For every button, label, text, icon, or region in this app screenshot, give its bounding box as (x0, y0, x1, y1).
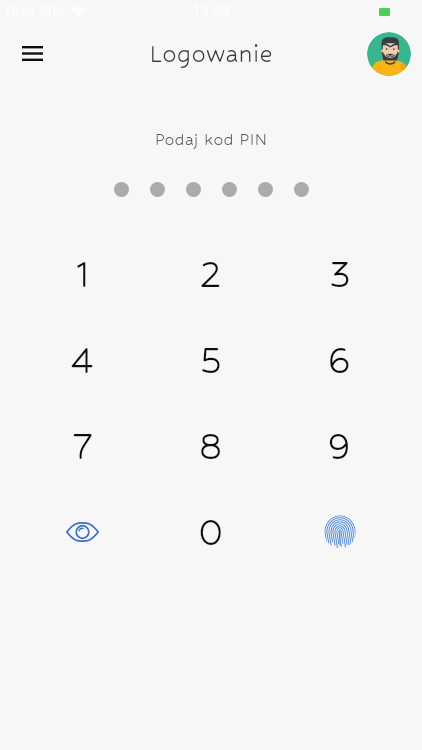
staticText: 6 (327, 339, 352, 382)
staticText: 3 (328, 253, 352, 296)
button[interactable]: 9 (275, 403, 404, 489)
button[interactable]: 8 (146, 403, 275, 489)
button[interactable]: 2 (146, 231, 275, 317)
staticText: 4 (70, 339, 94, 382)
staticText: Logowanie (0, 40, 422, 68)
button[interactable]: Fingerprint login (275, 489, 404, 575)
button[interactable]: 6 (275, 317, 404, 403)
staticText: 9 (327, 425, 352, 468)
button[interactable]: 4 (18, 317, 146, 403)
button[interactable]: Show PIN (18, 489, 146, 575)
button[interactable]: 5 (146, 317, 275, 403)
staticText: Podaj kod PIN (0, 130, 422, 149)
staticText: 7 (72, 425, 93, 468)
button[interactable]: 1 (18, 231, 146, 317)
button[interactable]: Menu (9, 30, 55, 76)
staticText: 8 (198, 425, 224, 468)
staticText: 1 (75, 253, 90, 296)
button[interactable]: Profile (367, 32, 411, 76)
button[interactable]: 0 (146, 489, 275, 575)
button[interactable]: 7 (18, 403, 146, 489)
staticText: 0 (198, 511, 224, 554)
staticText: 5 (199, 339, 223, 382)
staticText: 2 (199, 253, 222, 296)
button[interactable]: 3 (275, 231, 404, 317)
staticText: 12:05 (0, 2, 422, 20)
